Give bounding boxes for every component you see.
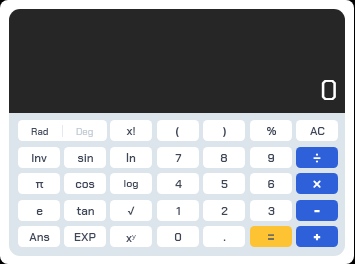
- button[interactable]: Equals: [250, 226, 292, 247]
- staticText: 3: [268, 203, 275, 218]
- staticText: 8: [220, 150, 228, 165]
- staticText: 9: [267, 150, 275, 165]
- button[interactable]: .: [203, 226, 245, 247]
- staticText: sin: [77, 150, 94, 165]
- staticText: 7: [175, 150, 182, 165]
- staticText: tan: [76, 203, 95, 218]
- button[interactable]: xʸ: [110, 226, 152, 247]
- staticText: Deg: [76, 125, 94, 137]
- button[interactable]: x!: [110, 120, 152, 141]
- staticText: ): [222, 124, 226, 138]
- staticText: xʸ: [126, 229, 136, 245]
- staticText: .: [223, 229, 226, 244]
- button[interactable]: Ans: [18, 226, 60, 247]
- staticText: 2: [221, 203, 228, 218]
- button[interactable]: Minus: [296, 200, 338, 221]
- button[interactable]: 8: [203, 147, 245, 168]
- staticText: 1: [176, 203, 181, 218]
- staticText: cos: [75, 176, 95, 191]
- staticText: EXP: [74, 229, 96, 244]
- staticText: 4: [175, 176, 182, 191]
- button[interactable]: ): [203, 120, 245, 141]
- button[interactable]: √: [110, 200, 152, 221]
- button[interactable]: π: [18, 173, 60, 194]
- button[interactable]: 3: [250, 200, 292, 221]
- button[interactable]: sin: [64, 147, 106, 168]
- button[interactable]: 5: [203, 173, 245, 194]
- staticText: e: [36, 203, 43, 218]
- button[interactable]: 9: [250, 147, 292, 168]
- button[interactable]: e: [18, 200, 60, 221]
- staticText: ln: [126, 150, 136, 165]
- button[interactable]: %: [250, 120, 292, 141]
- button[interactable]: (: [157, 120, 199, 141]
- staticText: %: [266, 123, 277, 138]
- staticText: Ans: [29, 229, 50, 244]
- staticText: log: [123, 177, 139, 191]
- button[interactable]: Inv: [18, 147, 60, 168]
- button[interactable]: 0: [157, 226, 199, 247]
- staticText: 0: [320, 72, 338, 109]
- staticText: (: [176, 124, 180, 138]
- button[interactable]: log: [110, 173, 152, 194]
- staticText: 6: [267, 176, 275, 191]
- staticText: Rad: [31, 125, 49, 137]
- button[interactable]: ln: [110, 147, 152, 168]
- button[interactable]: AC: [296, 120, 338, 141]
- button[interactable]: Plus: [296, 226, 338, 247]
- button[interactable]: 1: [157, 200, 199, 221]
- staticText: AC: [310, 123, 325, 138]
- staticText: √: [127, 203, 135, 218]
- button[interactable]: tan: [64, 200, 106, 221]
- button[interactable]: Deg: [63, 120, 106, 141]
- button[interactable]: cos: [64, 173, 106, 194]
- staticText: Inv: [31, 150, 47, 165]
- staticText: 0: [174, 229, 182, 244]
- staticText: x!: [126, 123, 136, 138]
- button[interactable]: Multiply: [296, 173, 338, 194]
- button[interactable]: Rad: [18, 120, 62, 141]
- button[interactable]: EXP: [64, 226, 106, 247]
- button[interactable]: 4: [157, 173, 199, 194]
- staticText: π: [35, 176, 44, 191]
- staticText: 5: [221, 176, 228, 191]
- button[interactable]: 6: [250, 173, 292, 194]
- button[interactable]: 2: [203, 200, 245, 221]
- button[interactable]: 7: [157, 147, 199, 168]
- button[interactable]: Divide: [296, 147, 338, 168]
